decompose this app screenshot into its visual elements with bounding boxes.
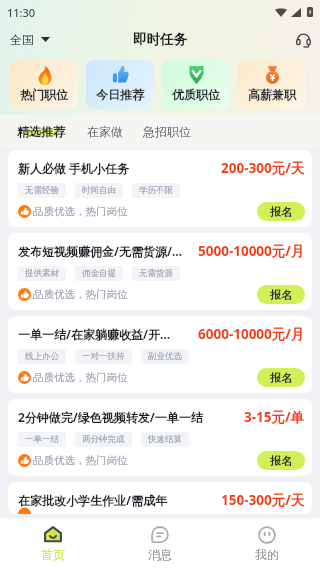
button[interactable]: Customer service — [291, 28, 315, 52]
staticText: 报名 — [270, 288, 292, 302]
staticText: 发布短视频赚佣金/无需货源/... — [18, 243, 194, 259]
staticText: 高薪兼职 — [248, 87, 296, 102]
staticText: 一对一扶持 — [82, 351, 125, 362]
button[interactable]: 高薪兼职 — [238, 60, 306, 109]
staticText: 品质优选，热门岗位 — [33, 454, 128, 467]
button[interactable]: 精选推荐 — [17, 124, 65, 139]
staticText: 一单一结 — [25, 434, 59, 445]
staticText: 一单一结/在家躺赚收益/开… — [18, 326, 194, 342]
staticText: 报名 — [270, 454, 292, 468]
button[interactable]: 报名 — [257, 368, 305, 387]
staticText: 无需货源 — [139, 268, 173, 279]
staticText: 时间自由 — [82, 185, 116, 196]
staticText: 佣金自提 — [82, 268, 116, 279]
button[interactable]: 在家批改小学生作业/需成年 — [8, 482, 312, 514]
button[interactable]: 2分钟做完/绿色视频转发/一单一结 — [8, 399, 312, 476]
button[interactable]: 今日推荐 — [86, 60, 154, 109]
staticText: 品质优选，热门岗位 — [33, 288, 128, 301]
button[interactable]: 发布短视频赚佣金/无需货源/... — [8, 233, 312, 310]
button[interactable]: 报名 — [257, 202, 305, 221]
button[interactable]: 消息 — [106, 520, 213, 568]
staticText: 学历不限 — [139, 185, 173, 196]
staticText: 6000-10000元/月 — [198, 325, 305, 343]
staticText: 报名 — [270, 371, 292, 385]
staticText: 新人必做 手机小任务 — [18, 160, 217, 176]
staticText: 副业优选 — [148, 351, 182, 362]
staticText: 在家批改小学生作业/需成年 — [18, 492, 217, 508]
staticText: 线上办公 — [25, 351, 59, 362]
staticText: 即时任务 — [133, 31, 187, 48]
staticText: 无需经验 — [25, 185, 59, 196]
button[interactable]: 新人必做 手机小任务 — [8, 150, 312, 227]
staticText: 今日推荐 — [96, 87, 144, 102]
button[interactable]: 报名 — [257, 451, 305, 470]
staticText: 消息 — [148, 547, 172, 562]
button[interactable]: 在家做 — [87, 124, 123, 139]
staticText: 3-15元/单 — [244, 408, 305, 426]
staticText: 品质优选，热门岗位 — [33, 205, 128, 218]
staticText: 提供素材 — [25, 268, 59, 279]
staticText: 11:30 — [7, 5, 36, 20]
staticText: 报名 — [270, 205, 292, 219]
staticText: 200-300元/天 — [221, 159, 305, 177]
staticText: 两分钟完成 — [82, 434, 125, 445]
button[interactable]: 首页 — [0, 520, 106, 568]
staticText: 快速结算 — [148, 434, 182, 445]
button[interactable]: 全国 — [0, 32, 56, 47]
button[interactable]: 报名 — [257, 285, 305, 304]
button[interactable]: 急招职位 — [143, 124, 191, 139]
staticText: 我的 — [255, 547, 279, 562]
staticText: 全国 — [10, 32, 34, 47]
button[interactable]: 优质职位 — [162, 60, 230, 109]
staticText: 2分钟做完/绿色视频转发/一单一结 — [18, 409, 240, 425]
staticText: 5000-10000元/月 — [198, 242, 305, 260]
button[interactable]: 热门职位 — [10, 60, 78, 109]
staticText: 优质职位 — [172, 87, 220, 102]
staticText: 品质优选，热门岗位 — [33, 371, 128, 384]
staticText: 精选推荐 — [17, 124, 65, 139]
staticText: 热门职位 — [20, 87, 68, 102]
button[interactable]: 一单一结/在家躺赚收益/开… — [8, 316, 312, 393]
button[interactable]: 我的 — [213, 520, 320, 568]
staticText: 150-300元/天 — [221, 491, 305, 509]
staticText: 首页 — [41, 547, 65, 562]
